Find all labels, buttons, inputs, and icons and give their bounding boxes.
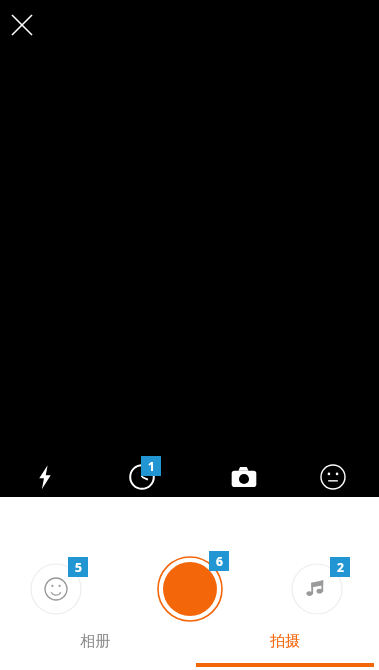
button[interactable]: Camera bbox=[220, 453, 268, 501]
staticText: 6 bbox=[216, 553, 223, 569]
button[interactable]: Filters bbox=[309, 453, 357, 501]
button[interactable]: Stickers bbox=[30, 563, 82, 615]
staticText: 相册 bbox=[80, 632, 110, 651]
button[interactable]: Flash bbox=[21, 453, 69, 501]
button[interactable]: Close bbox=[6, 9, 38, 41]
button[interactable]: 拍摄 bbox=[190, 632, 379, 670]
button[interactable]: Music bbox=[291, 563, 343, 615]
button[interactable]: Shutter bbox=[157, 556, 223, 622]
button[interactable]: 相册 bbox=[0, 632, 189, 670]
staticText: 2 bbox=[337, 559, 344, 575]
staticText: 拍摄 bbox=[270, 632, 300, 651]
button[interactable]: Timer bbox=[118, 453, 166, 501]
staticText: 5 bbox=[75, 559, 82, 575]
staticText: 1 bbox=[148, 458, 155, 474]
